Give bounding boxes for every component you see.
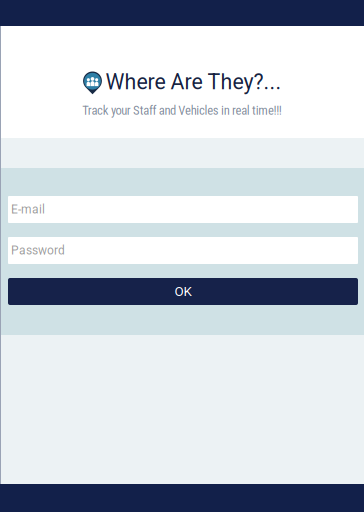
staticText: OK	[174, 284, 191, 299]
staticText: Track your Staff and Vehicles in real ti…	[82, 103, 282, 118]
staticText: Where Are They?...	[105, 69, 281, 94]
staticText: Password	[11, 243, 65, 258]
button[interactable]: E-mail	[8, 196, 358, 223]
button[interactable]: OK	[8, 278, 358, 305]
button[interactable]: Password	[8, 237, 358, 264]
staticText: E-mail	[11, 202, 45, 217]
